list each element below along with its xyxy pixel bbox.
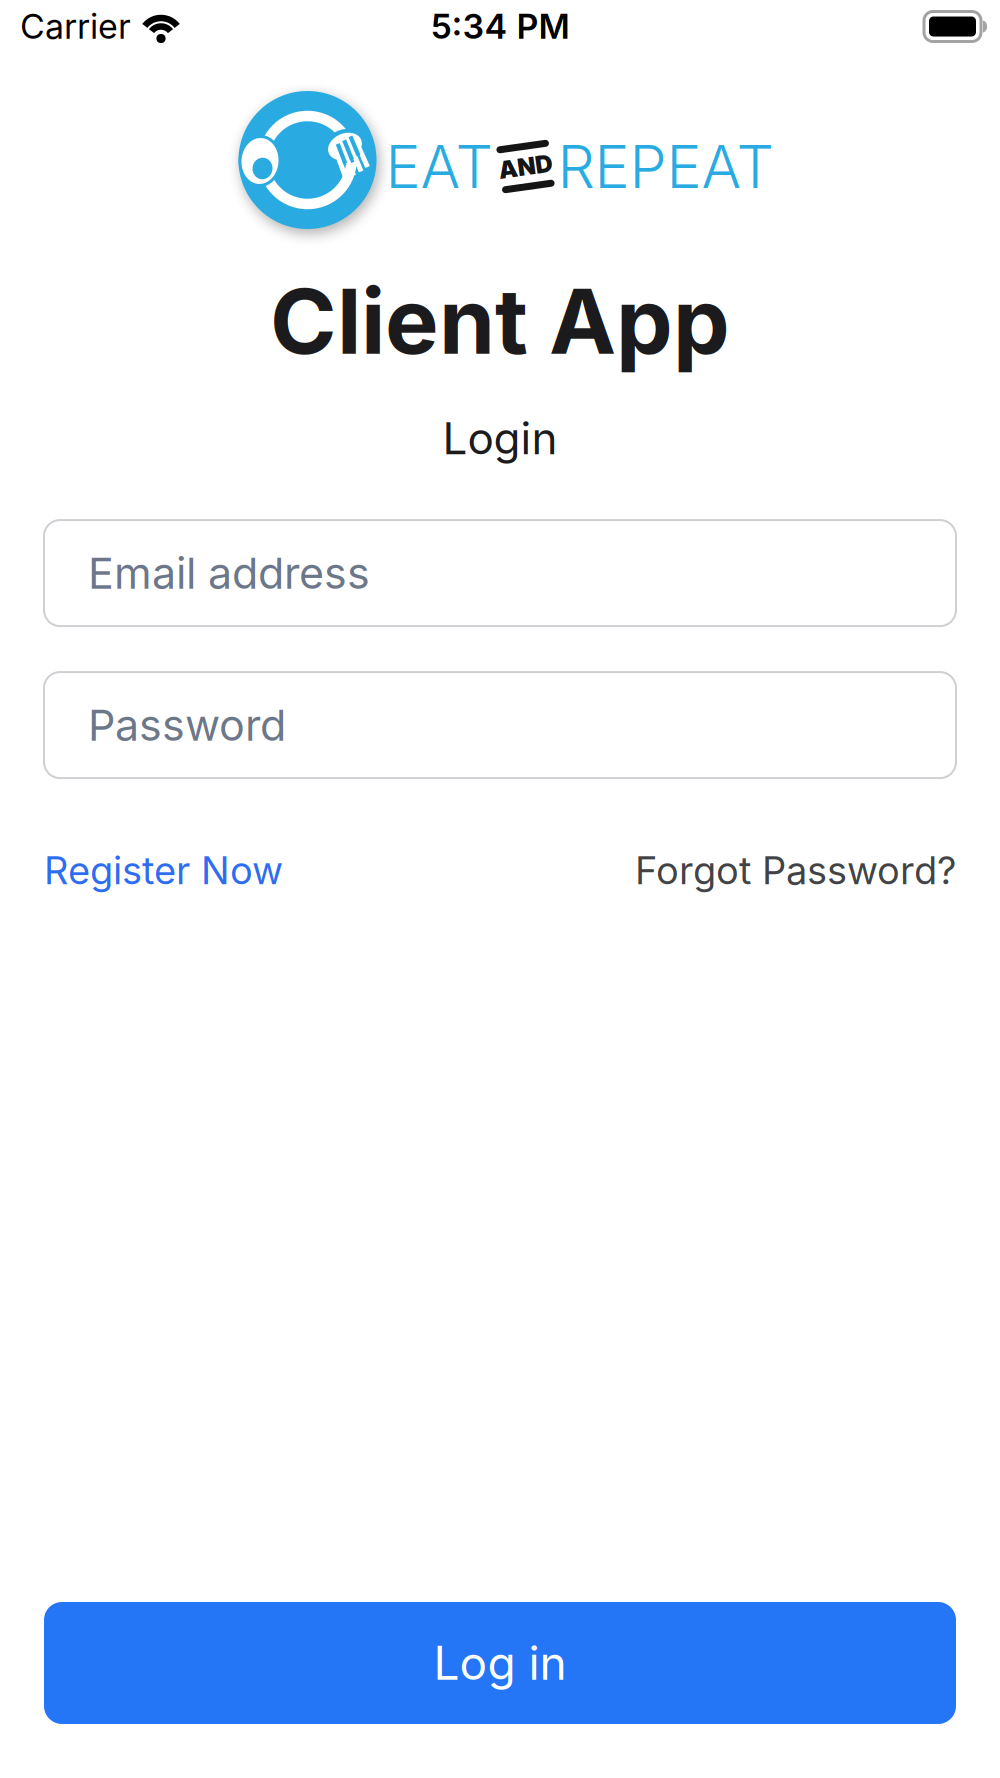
staticText: EAT [385, 132, 493, 201]
staticText: Register Now [44, 848, 283, 893]
button[interactable]: Password [44, 672, 956, 778]
staticText: REPEAT [557, 132, 774, 201]
staticText: Login [442, 412, 557, 464]
button[interactable]: Forgot Password? [635, 848, 956, 893]
staticText: 5:34 PM [430, 6, 569, 46]
staticText: Carrier [20, 6, 131, 46]
staticText: Client App [270, 268, 730, 374]
button[interactable]: Log in [44, 1602, 956, 1724]
button[interactable]: Email address [44, 520, 956, 626]
staticText: Email address [88, 548, 370, 598]
button[interactable]: Register Now [44, 848, 283, 893]
staticText: Forgot Password? [635, 848, 956, 893]
staticText: Password [88, 700, 286, 750]
staticText: AND [498, 152, 552, 181]
staticText: Log in [433, 1636, 566, 1690]
